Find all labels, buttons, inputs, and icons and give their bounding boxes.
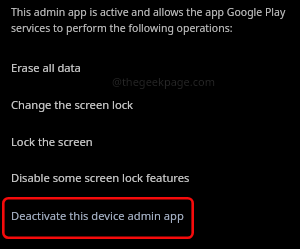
staticText: This admin app is active and allows the …	[11, 5, 300, 35]
other: Highlight annotation	[2, 197, 194, 239]
staticText: Erase all data	[11, 60, 81, 75]
button[interactable]: Erase all data	[0, 57, 300, 77]
button[interactable]: Change the screen lock	[0, 94, 300, 114]
staticText: Deactivate this device admin app	[11, 208, 184, 223]
staticText: Change the screen lock	[11, 97, 134, 112]
button[interactable]: Lock the screen	[0, 131, 300, 151]
staticText: Lock the screen	[11, 134, 93, 149]
staticText: Disable some screen lock features	[11, 170, 190, 185]
button[interactable]: Disable some screen lock features	[0, 167, 300, 187]
staticText: @thegeekpage.com	[112, 74, 215, 89]
button[interactable]: Deactivate this device admin app	[11, 208, 184, 223]
